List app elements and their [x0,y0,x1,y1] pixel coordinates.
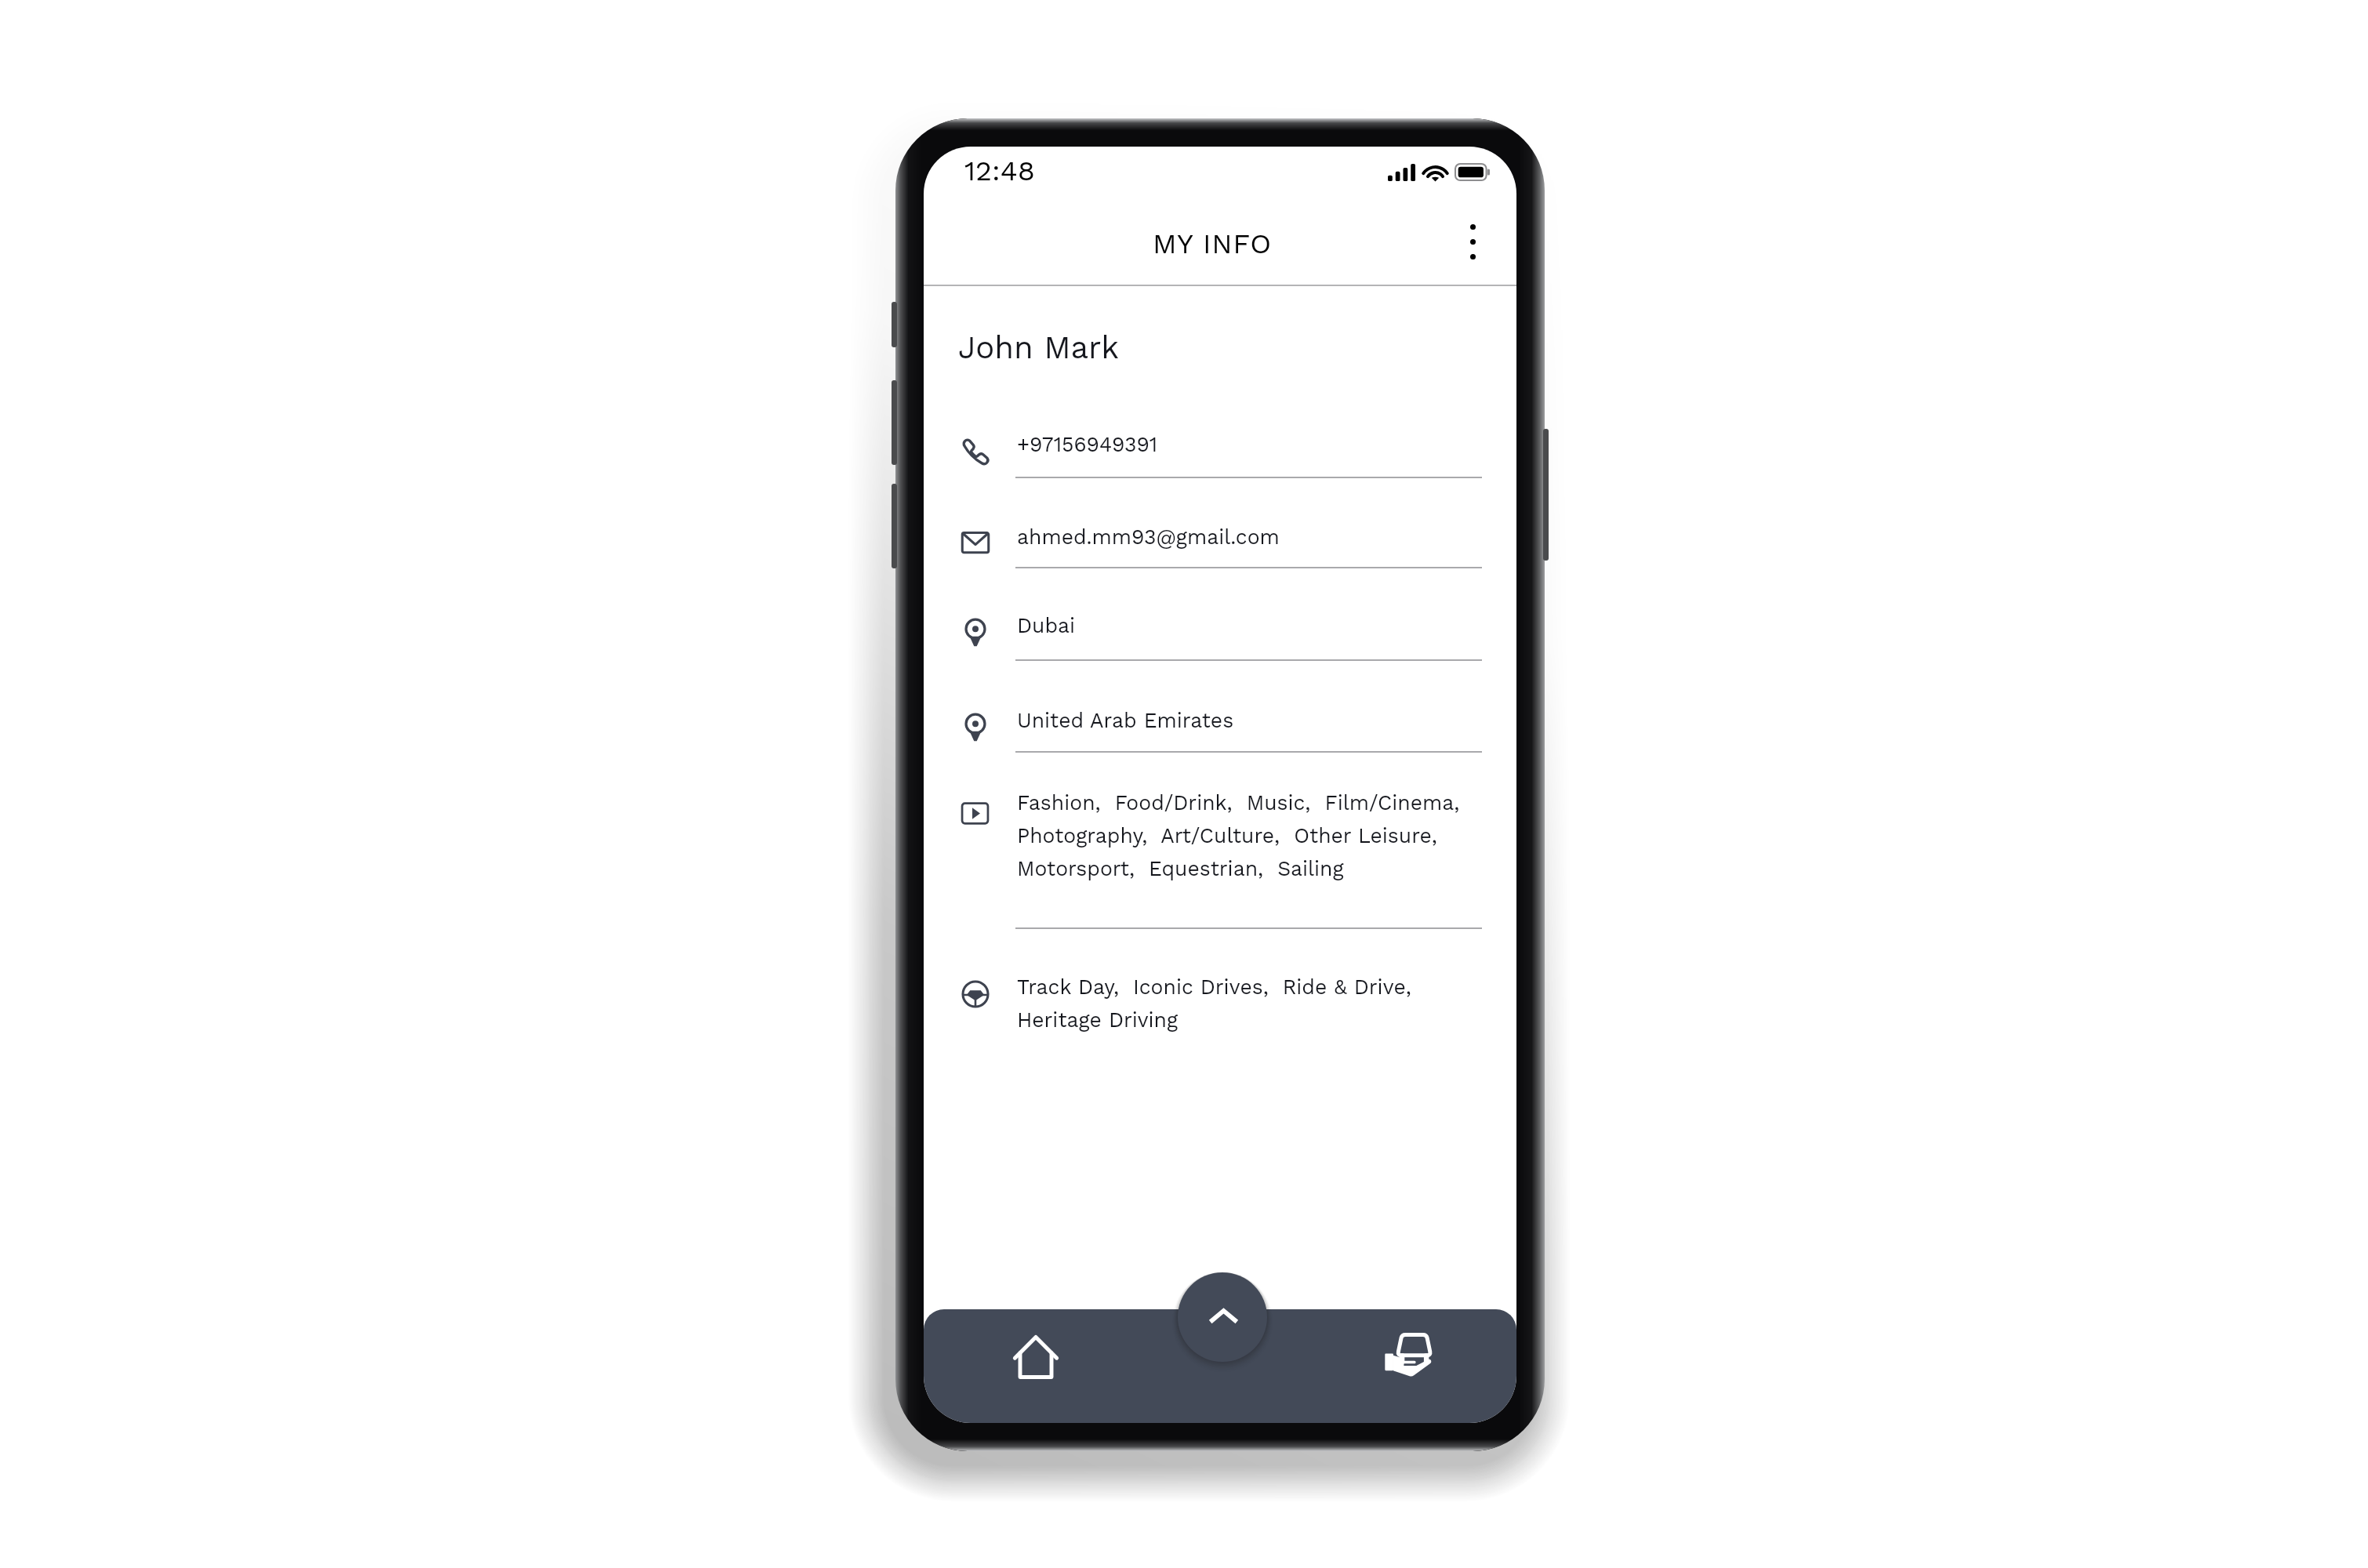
staticText: Track Day, Iconic Drives, Ride & Drive, [1017,975,1411,999]
button[interactable]: Driving experiences [924,927,1516,1072]
button[interactable]: Home [985,1309,1087,1423]
button[interactable]: More options [1440,209,1505,274]
button[interactable]: John Mark [958,329,1120,366]
button[interactable]: Country [924,659,1516,751]
button[interactable]: Interests [924,751,1516,927]
staticText: Motorsport, Equestrian, Sailing [1017,856,1344,880]
button[interactable]: Expand menu [1178,1272,1267,1362]
button[interactable]: Email address [924,477,1516,568]
button[interactable]: My vehicles [1357,1309,1459,1423]
staticText: ahmed.mm93@gmail.com [1017,524,1280,549]
staticText: Dubai [1017,613,1076,637]
staticText: United Arab Emirates [1017,708,1234,732]
staticText: Heritage Driving [1017,1007,1179,1032]
staticText: Fashion, Food/Drink, Music, Film/Cinema, [1017,790,1460,815]
button[interactable]: City [924,567,1516,659]
staticText: 12:48 [964,154,1035,187]
button[interactable]: Phone number [924,387,1516,477]
staticText: Photography, Art/Culture, Other Leisure, [1017,823,1437,848]
staticText: MY INFO [1153,227,1272,260]
staticText: +97156949391 [1017,432,1158,456]
